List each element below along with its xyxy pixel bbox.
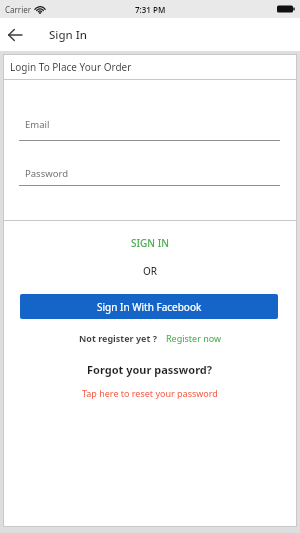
button[interactable]: Sign In With Facebook xyxy=(20,294,278,319)
staticText: SIGN IN xyxy=(131,236,169,250)
staticText: Sign In With Facebook xyxy=(97,300,202,314)
button[interactable]: Login To Place Your Order xyxy=(3,54,297,79)
staticText: Register now xyxy=(166,332,222,344)
button[interactable]: Tap here to reset your password xyxy=(82,387,218,399)
button[interactable]: SIGN IN xyxy=(131,236,169,250)
staticText: Forgot your password? xyxy=(87,362,213,377)
button[interactable] xyxy=(8,29,22,41)
staticText: OR xyxy=(143,264,158,278)
staticText: Login To Place Your Order xyxy=(10,60,132,74)
staticText: Sign In xyxy=(49,27,88,43)
staticText: Not register yet ? xyxy=(79,332,157,344)
staticText: 7:31 PM xyxy=(135,4,166,15)
staticText: Tap here to reset your password xyxy=(82,387,218,399)
button[interactable]: Password xyxy=(25,167,68,180)
button[interactable]: Email xyxy=(25,118,50,131)
button[interactable]: Register now xyxy=(166,332,222,344)
staticText: Carrier xyxy=(5,4,32,15)
